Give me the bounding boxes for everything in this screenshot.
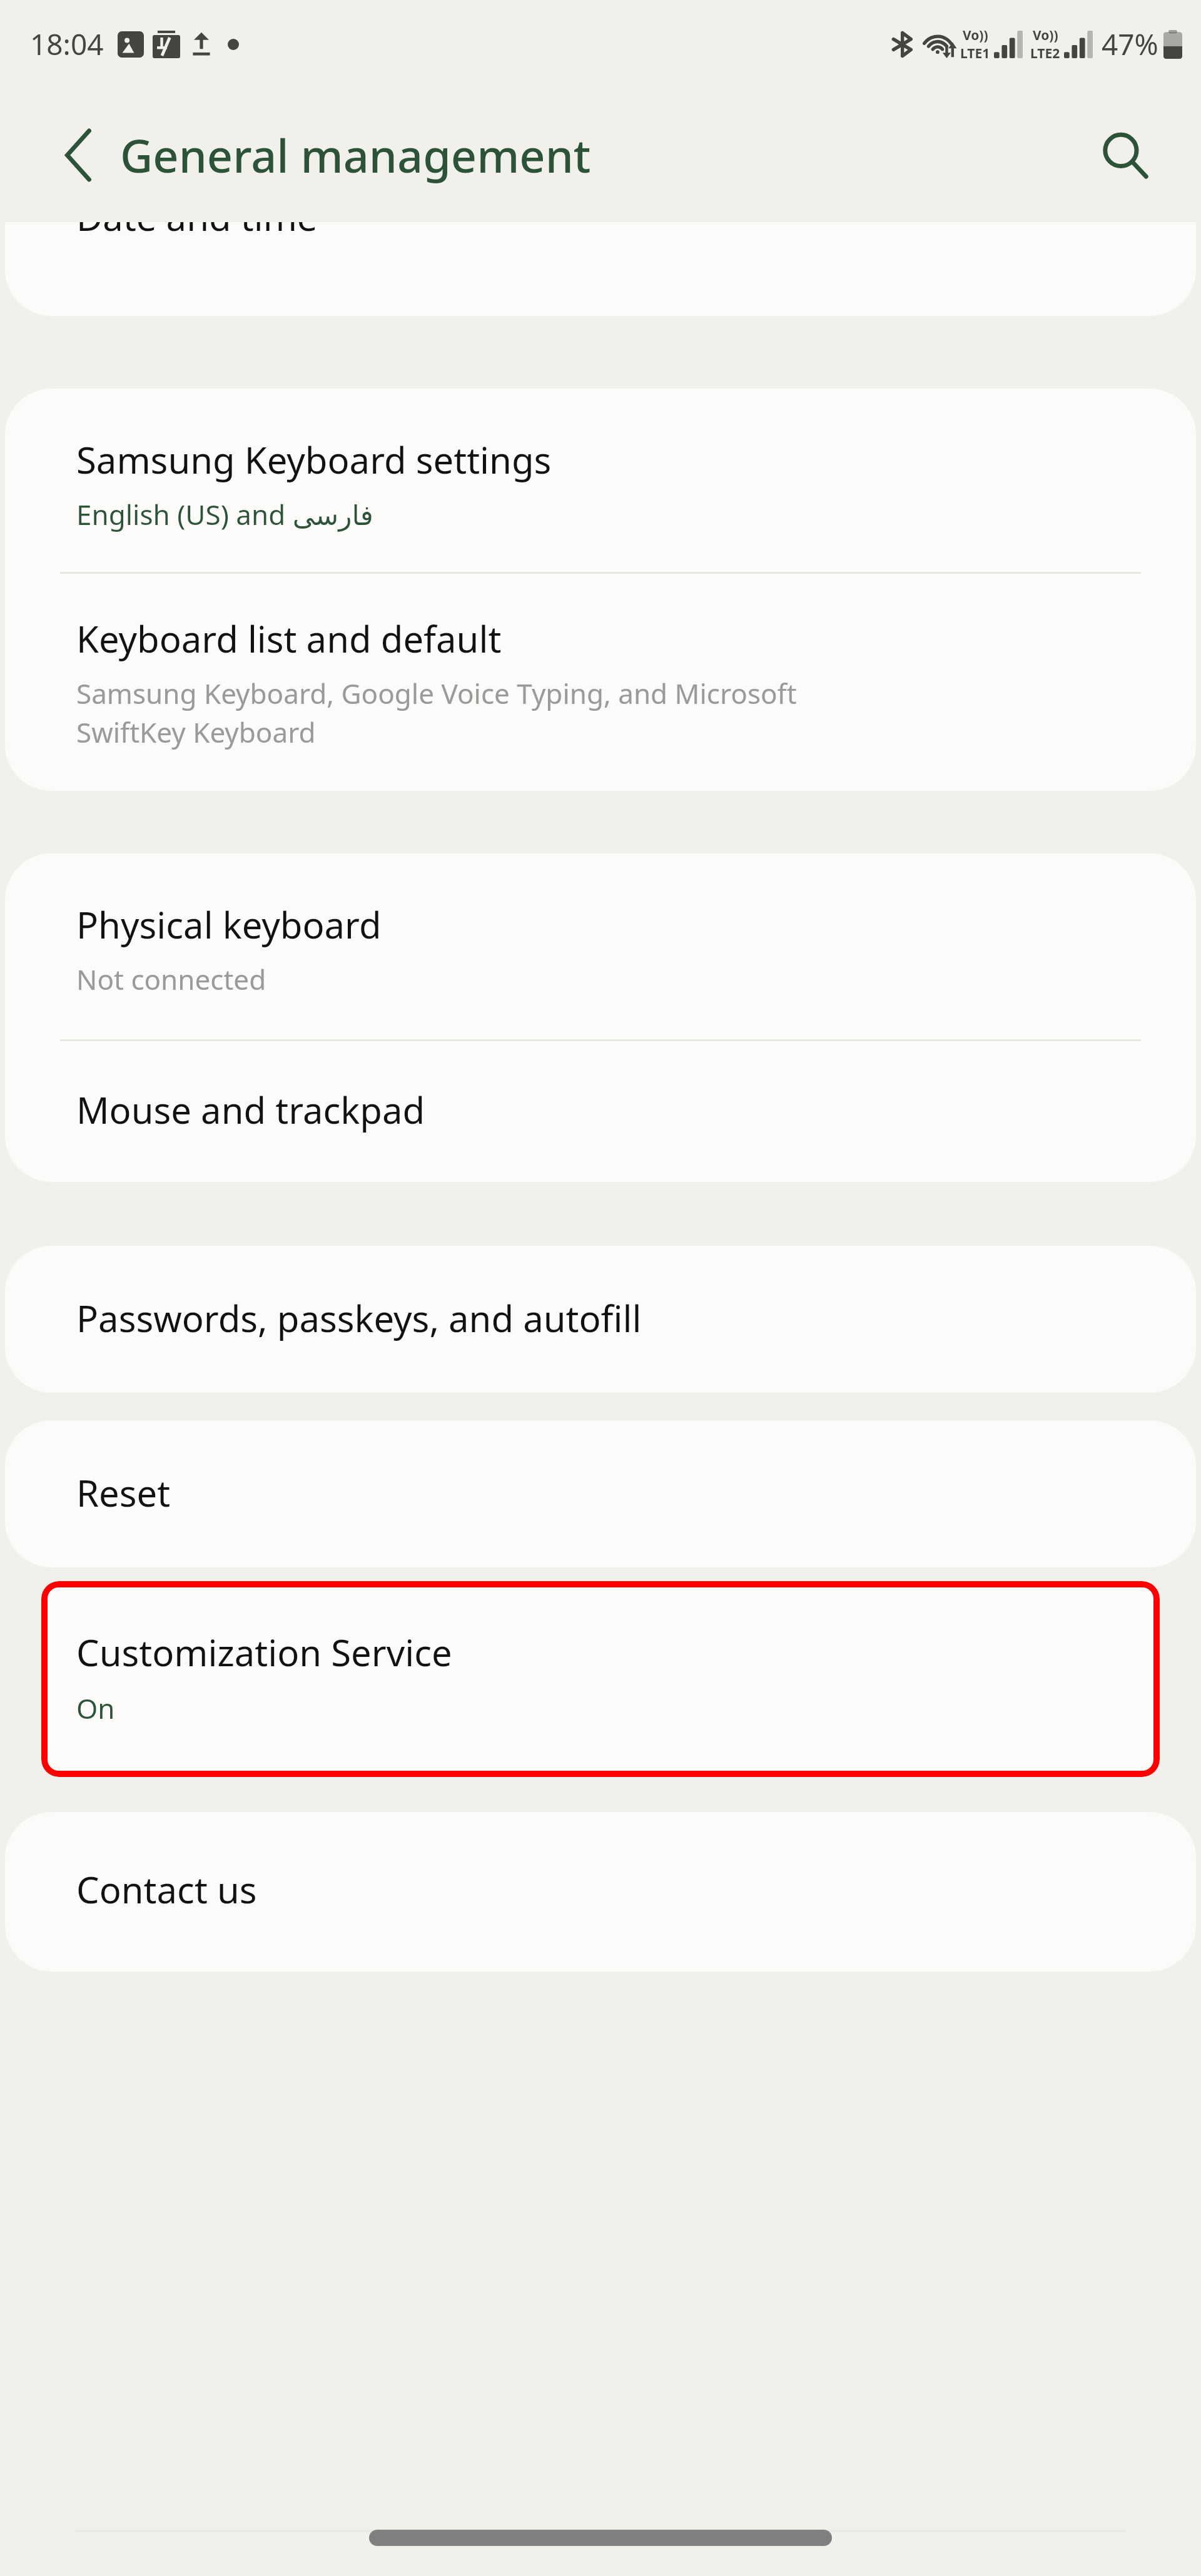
staticText: Contact us bbox=[76, 1865, 257, 1914]
button[interactable]: Samsung Keyboard settings bbox=[5, 389, 1196, 572]
button[interactable]: Back bbox=[44, 121, 113, 190]
staticText: 47% bbox=[1102, 24, 1158, 64]
staticText: Passwords, passkeys, and autofill bbox=[76, 1293, 642, 1343]
staticText: Customization Service bbox=[76, 1627, 452, 1677]
button[interactable]: Physical keyboard bbox=[5, 853, 1196, 1039]
staticText: Date and time bbox=[76, 222, 318, 242]
button[interactable]: Mouse and trackpad bbox=[5, 1041, 1196, 1182]
staticText: Samsung Keyboard settings bbox=[76, 435, 552, 484]
button[interactable]: Date and time bbox=[5, 222, 1196, 316]
button[interactable]: Contact us bbox=[5, 1812, 1196, 1972]
staticText: LTE2 bbox=[1030, 44, 1060, 63]
button[interactable]: Passwords, passkeys, and autofill bbox=[5, 1246, 1196, 1393]
staticText: On bbox=[76, 1689, 115, 1727]
staticText: Not connected bbox=[76, 960, 266, 998]
staticText: LTE1 bbox=[960, 44, 990, 63]
staticText: Keyboard list and default bbox=[76, 614, 502, 663]
staticText: Reset bbox=[76, 1468, 171, 1517]
button[interactable]: Reset bbox=[5, 1420, 1196, 1567]
staticText: General management bbox=[120, 125, 591, 186]
staticText: Mouse and trackpad bbox=[76, 1085, 425, 1134]
staticText: Samsung Keyboard, Google Voice Typing, a… bbox=[76, 675, 797, 751]
staticText: Vo)) bbox=[963, 26, 988, 44]
staticText: Physical keyboard bbox=[76, 900, 382, 949]
staticText: Vo)) bbox=[1033, 26, 1058, 44]
button[interactable]: Keyboard list and default bbox=[5, 574, 1196, 791]
button[interactable]: Search bbox=[1087, 118, 1162, 193]
staticText: 18:04 bbox=[30, 24, 104, 64]
button[interactable]: Customization Service bbox=[41, 1581, 1160, 1777]
staticText: English (US) and فارسی bbox=[76, 496, 373, 533]
